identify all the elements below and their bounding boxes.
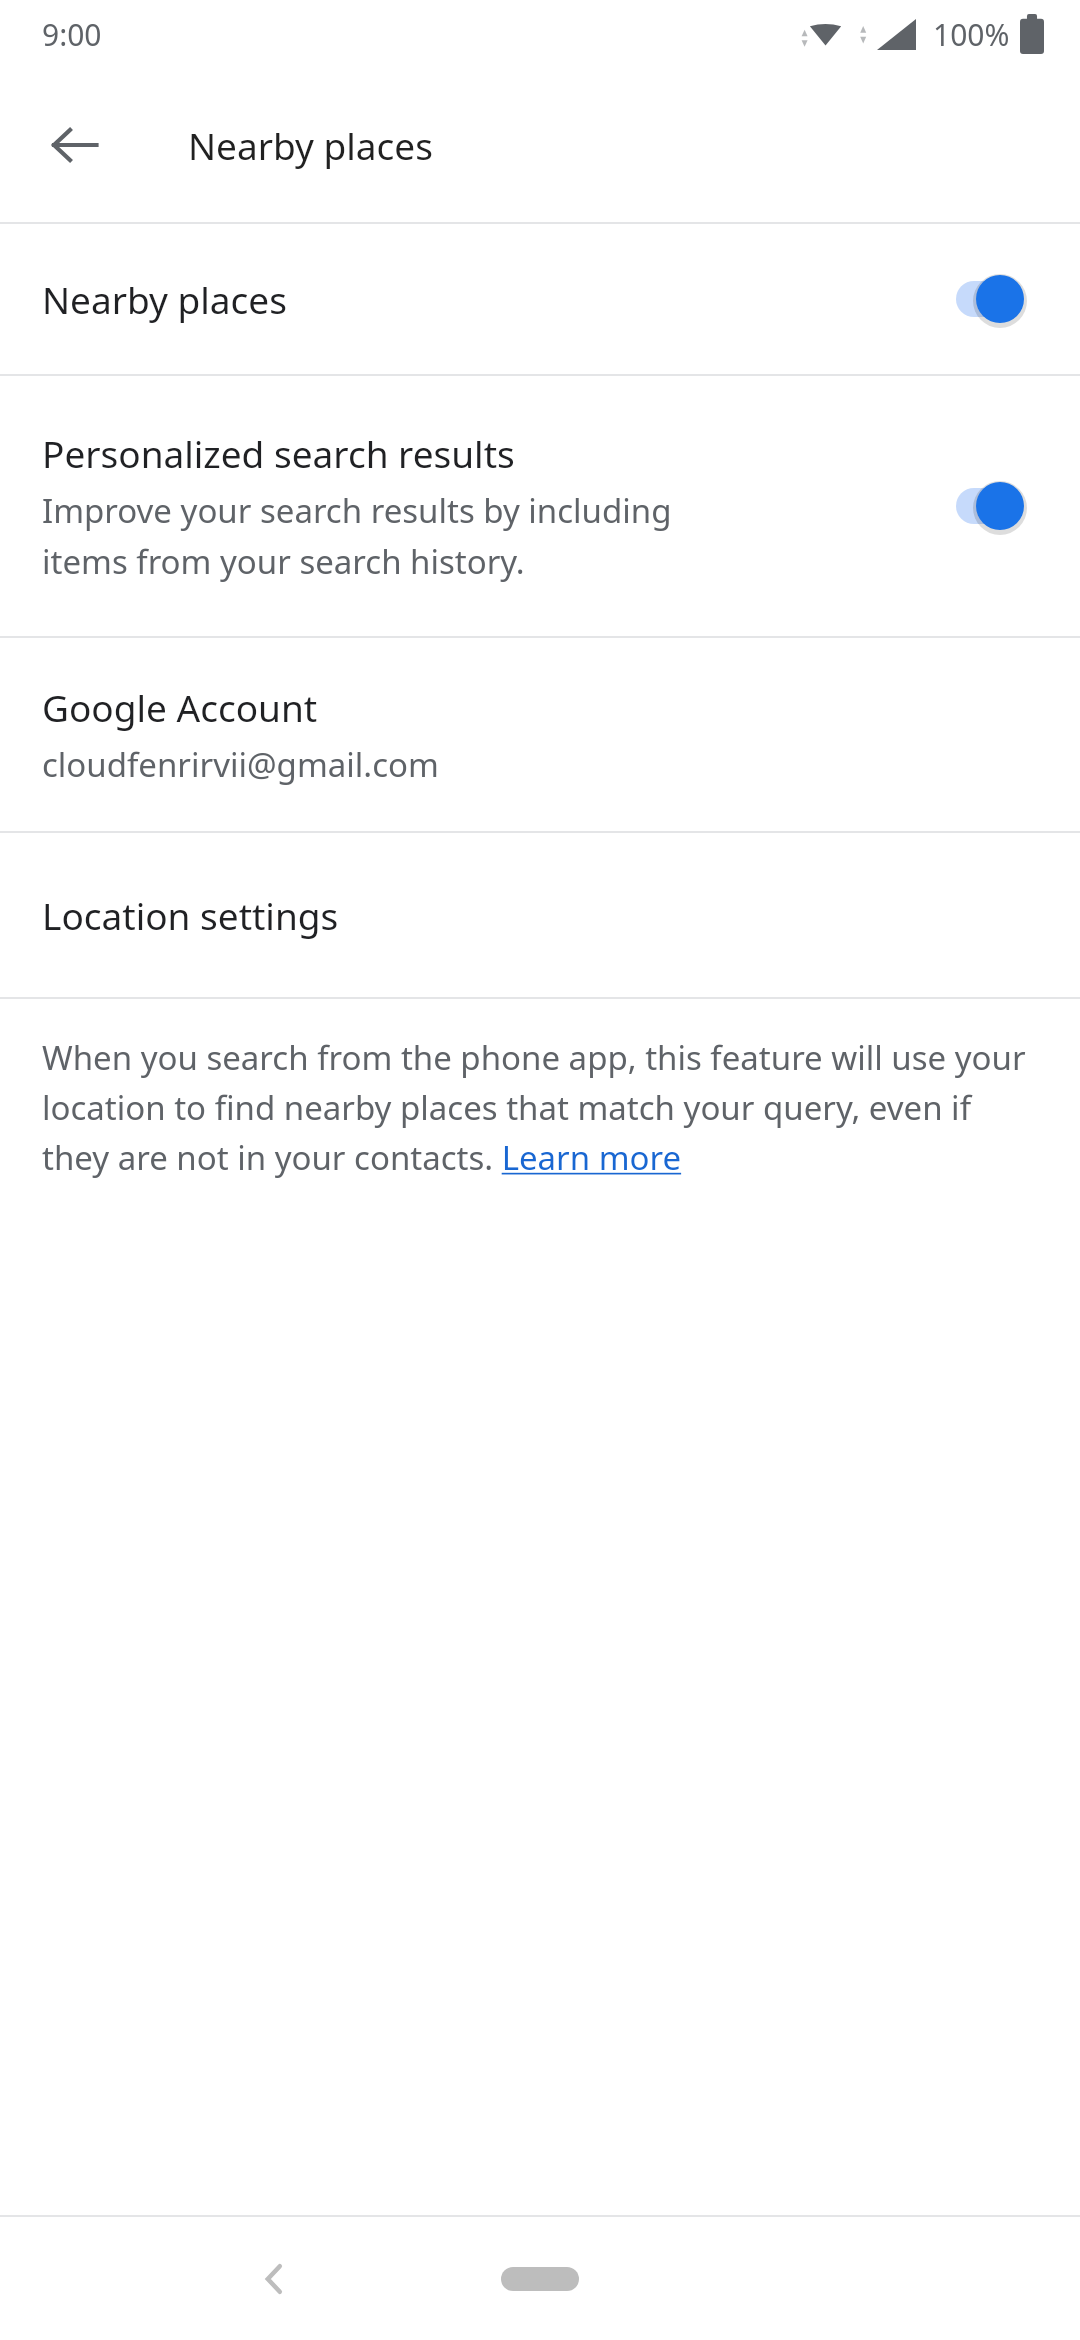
button[interactable]: Nearby places — [0, 224, 1080, 374]
button[interactable]: Location settings — [0, 833, 1080, 997]
staticText: 9:00 — [42, 14, 102, 55]
button[interactable]: Personalized search results — [0, 376, 1080, 636]
button[interactable]: Toggle — [954, 269, 1044, 329]
staticText: cloudfenrirvii@gmail.com — [42, 742, 439, 787]
button[interactable]: Back — [225, 2229, 325, 2329]
button[interactable]: When you search from the phone app, this… — [0, 999, 1080, 1204]
staticText: Nearby places — [42, 274, 287, 324]
button[interactable]: Back — [27, 97, 123, 193]
staticText: Nearby places — [188, 120, 433, 170]
staticText: Improve your search results by including — [42, 488, 672, 533]
staticText: Google Account — [42, 682, 318, 732]
staticText: Personalized search results — [42, 428, 515, 478]
staticText: 100% — [933, 14, 1010, 55]
staticText: Location settings — [42, 890, 339, 940]
button[interactable]: Google Account — [0, 638, 1080, 831]
staticText: When you search from the phone app, this… — [42, 1035, 1044, 1180]
staticText: items from your search history. — [42, 539, 525, 584]
button[interactable]: Toggle — [954, 476, 1044, 536]
button[interactable]: Home — [465, 2249, 615, 2309]
